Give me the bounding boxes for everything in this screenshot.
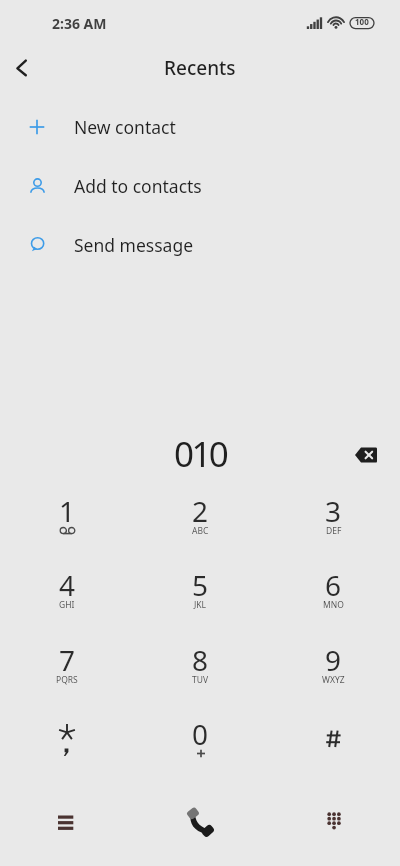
button[interactable] (267, 715, 400, 785)
staticText: 100 (355, 16, 369, 27)
button[interactable]: 3 (267, 492, 400, 562)
button[interactable]: Send message (0, 215, 400, 274)
staticText: 9 (325, 641, 342, 679)
staticText: 7 (59, 641, 76, 679)
button[interactable]: Add to contacts (0, 156, 400, 215)
staticText: 3 (325, 492, 342, 530)
staticText: 010 (174, 430, 227, 478)
staticText: 0 (192, 715, 209, 753)
staticText: WXYZ (322, 674, 345, 686)
staticText: 4 (59, 566, 76, 604)
staticText: Add to contacts (74, 174, 202, 198)
button[interactable]: 2 (134, 492, 267, 562)
staticText: 6 (325, 566, 342, 604)
staticText: 8 (192, 641, 209, 679)
button[interactable] (0, 715, 134, 785)
button[interactable]: 7 (0, 641, 134, 711)
staticText: 1 (59, 492, 76, 530)
button[interactable]: Dialpad (267, 790, 400, 854)
button[interactable]: 6 (267, 566, 400, 636)
staticText: Recents (164, 55, 236, 81)
button[interactable]: 0 (134, 715, 267, 785)
staticText: 2:36 AM (52, 14, 107, 33)
button[interactable]: New contact (0, 97, 400, 156)
button[interactable]: 5 (134, 566, 267, 636)
staticText: New contact (74, 115, 176, 139)
staticText: MNO (323, 599, 344, 611)
button[interactable]: 9 (267, 641, 400, 711)
staticText: TUV (192, 674, 209, 686)
staticText: ABC (192, 525, 209, 537)
button[interactable]: 4 (0, 566, 134, 636)
staticText: GHI (59, 599, 75, 611)
button[interactable]: Backspace (344, 433, 388, 477)
staticText: JKL (194, 599, 207, 611)
button[interactable]: Back (0, 47, 44, 91)
staticText: DEF (326, 525, 342, 537)
staticText: PQRS (56, 674, 78, 686)
staticText: Send message (74, 233, 194, 257)
button[interactable]: 1 (0, 492, 134, 562)
button[interactable]: Call (134, 790, 267, 854)
staticText: 5 (192, 566, 209, 604)
button[interactable]: 8 (134, 641, 267, 711)
button[interactable]: Call log (0, 790, 134, 854)
staticText: 2 (192, 492, 209, 530)
